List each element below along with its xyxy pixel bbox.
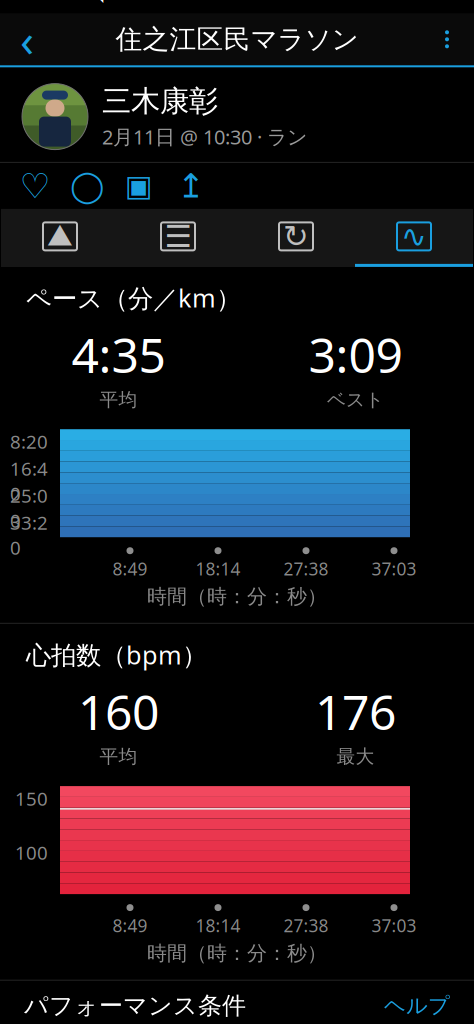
staticText: 時間（時：分：秒） [147, 584, 327, 609]
staticText: 25:00 [10, 483, 48, 533]
staticText: 時間（時：分：秒） [147, 941, 327, 966]
staticText: 平均 [99, 388, 137, 411]
staticText: 心拍数（bpm） [26, 638, 207, 671]
staticText: ∿ [401, 219, 427, 254]
staticText: 33:20 [10, 510, 48, 560]
staticText: ⛰ [47, 221, 73, 251]
staticText: 2月11日 @ 10:30 · ラン [102, 123, 307, 150]
staticText: 最大 [336, 745, 374, 768]
staticText: 16:40 [10, 456, 48, 506]
staticText: 住之江区民マラソン [115, 23, 358, 56]
staticText: 三木康彰 [102, 83, 218, 119]
button[interactable]: Like [12, 166, 58, 206]
button[interactable]: Photos [116, 166, 162, 206]
staticText: 160 [78, 679, 159, 743]
staticText: ☰ [164, 219, 191, 254]
button[interactable]: Profile photo [22, 84, 88, 150]
button[interactable]: Details [119, 209, 237, 267]
button[interactable]: Back [0, 13, 54, 65]
staticText: パフォーマンス条件 [24, 991, 246, 1020]
staticText: 27:38 [283, 914, 328, 937]
staticText: 18:49 ◹ [22, 0, 103, 6]
button[interactable]: Share [168, 166, 214, 206]
staticText: ♡ [19, 166, 50, 205]
staticText: ↥ [177, 167, 205, 205]
button[interactable]: Charts [355, 209, 473, 267]
button[interactable]: Map [1, 209, 119, 267]
staticText: ‹ [20, 9, 34, 69]
staticText: 27:38 [283, 557, 328, 580]
button[interactable]: パフォーマンス条件 [0, 981, 474, 1024]
staticText: ペース（分／km） [26, 281, 241, 314]
staticText: ▣ [125, 169, 153, 203]
button[interactable]: Comment [64, 166, 110, 206]
staticText: 100 [15, 840, 48, 865]
staticText: 8:49 [112, 557, 147, 580]
staticText: 37:03 [371, 914, 416, 937]
staticText: 18:14 [195, 557, 240, 580]
staticText: 4:35 [71, 322, 165, 386]
staticText: 176 [315, 679, 396, 743]
staticText: 平均 [99, 745, 137, 768]
staticText: 8:20 [10, 429, 48, 454]
button[interactable]: More options [420, 13, 474, 65]
staticText: 150 [15, 786, 48, 811]
staticText: 3:09 [308, 322, 402, 386]
staticText: ベスト [327, 388, 384, 411]
staticText: 18:14 [195, 914, 240, 937]
staticText: 8:49 [112, 914, 147, 937]
staticText: ◯ [70, 168, 104, 203]
button[interactable]: Laps [237, 209, 355, 267]
staticText: ヘルプ [384, 993, 450, 1019]
staticText: 37:03 [371, 557, 416, 580]
staticText: ↻ [283, 219, 309, 254]
